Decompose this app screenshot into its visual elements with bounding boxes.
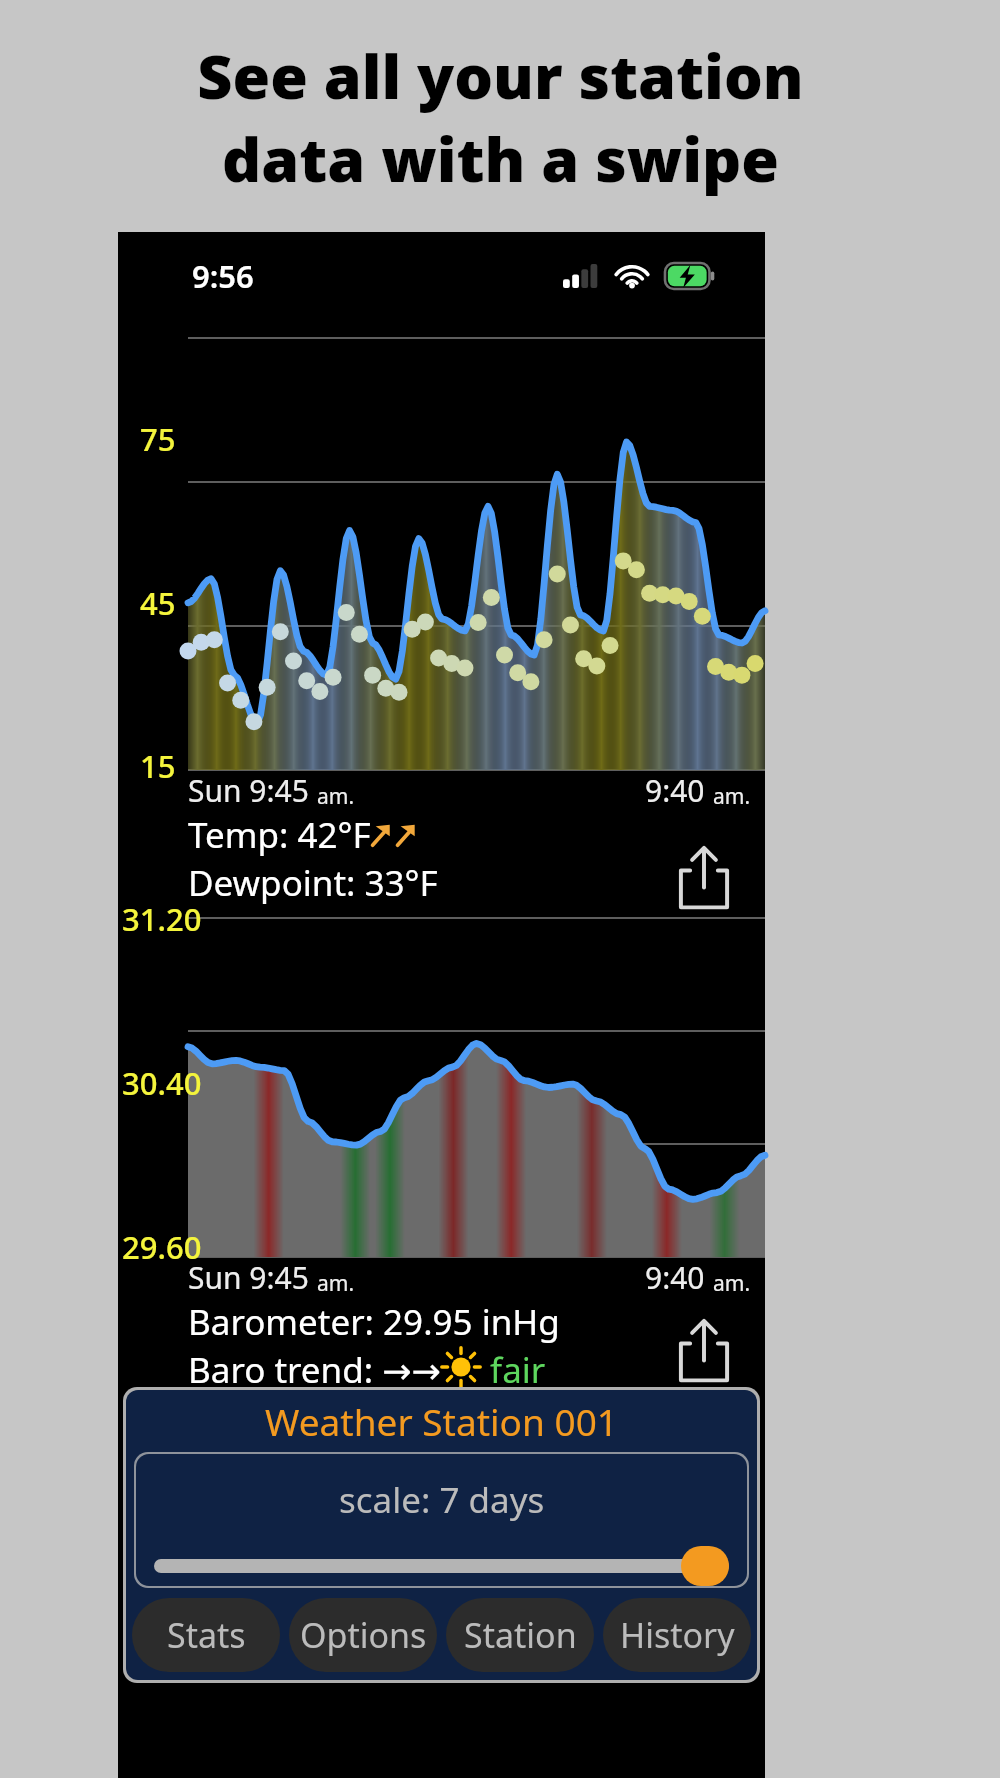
staticText: Station — [464, 1612, 577, 1658]
staticText: 75 — [140, 418, 176, 460]
staticText: Stats — [167, 1612, 246, 1658]
staticText: 31.20 — [122, 898, 202, 940]
staticText: 9:40 — [645, 770, 713, 811]
staticText: fair — [481, 1346, 546, 1387]
staticText: Sun 9:45 — [188, 1257, 317, 1298]
staticText: 9:56 — [192, 255, 254, 297]
button[interactable]: scale: 7 days — [136, 1454, 747, 1586]
staticText: Sun 9:45 — [188, 770, 317, 811]
staticText: 30.40 — [122, 1062, 202, 1104]
button[interactable]: History — [603, 1598, 751, 1672]
button[interactable]: Station — [446, 1598, 594, 1672]
staticText: 45 — [140, 582, 176, 624]
staticText: scale: 7 days — [339, 1476, 545, 1524]
staticText: Temp: 42°F — [188, 811, 371, 859]
button[interactable]: Share temperature chart — [671, 844, 737, 910]
staticText: 29.60 — [122, 1226, 202, 1268]
button[interactable]: Share barometer chart — [671, 1317, 737, 1383]
staticText: am. — [317, 1269, 355, 1298]
staticText: 9:40 — [645, 1257, 713, 1298]
staticText: am. — [317, 782, 355, 811]
button[interactable]: Options — [289, 1598, 437, 1672]
staticText: Barometer: 29.95 inHg — [188, 1298, 560, 1346]
staticText: am. — [713, 782, 751, 811]
staticText: Weather Station 001 — [265, 1396, 618, 1446]
staticText: See all your station — [197, 34, 804, 117]
staticText: am. — [713, 1269, 751, 1298]
staticText: 15 — [140, 745, 176, 787]
staticText: History — [620, 1612, 735, 1658]
staticText: Options — [300, 1612, 427, 1658]
staticText: Dewpoint: 33°F — [188, 859, 438, 907]
staticText: Baro trend: →→ — [188, 1346, 441, 1387]
staticText: data with a swipe — [222, 117, 779, 200]
button[interactable]: Stats — [132, 1598, 280, 1672]
